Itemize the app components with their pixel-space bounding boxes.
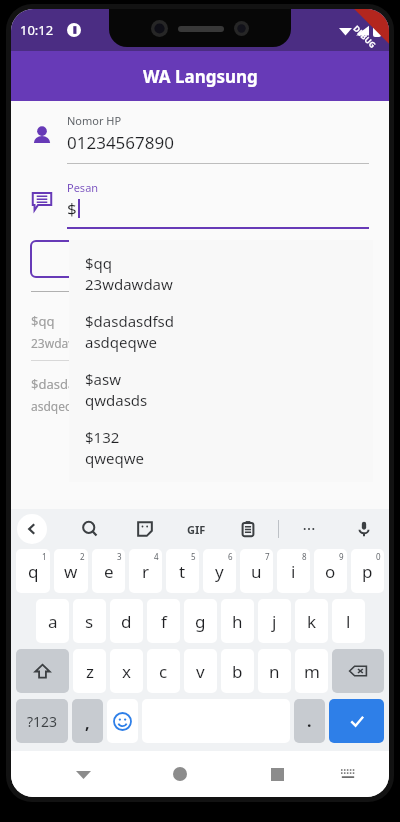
staticText: x xyxy=(122,660,131,683)
staticText: f xyxy=(161,610,167,633)
button[interactable]: c xyxy=(147,649,180,693)
staticText: y xyxy=(215,560,224,583)
staticText: c xyxy=(159,660,168,683)
button[interactable]: w xyxy=(54,549,88,593)
staticText: Pesan xyxy=(67,180,99,195)
staticText: 23wdawdaw xyxy=(85,274,173,294)
button[interactable]: u xyxy=(240,549,273,593)
button[interactable]: a xyxy=(36,599,69,643)
button[interactable]: e xyxy=(92,549,125,593)
staticText: $qq xyxy=(85,253,113,273)
staticText: 01234567890 xyxy=(67,131,174,154)
staticText: t xyxy=(179,560,186,583)
button[interactable]: y xyxy=(203,549,236,593)
button[interactable]: Voice input xyxy=(351,516,377,542)
button[interactable]: o xyxy=(314,549,347,593)
button[interactable]: Backspace xyxy=(332,649,384,693)
button[interactable]: i xyxy=(277,549,310,593)
button[interactable]: Clipboard xyxy=(235,516,261,542)
staticText: , xyxy=(85,712,90,734)
staticText: ?123 xyxy=(27,712,58,731)
button[interactable]: v xyxy=(184,649,217,693)
staticText: 0 xyxy=(376,551,381,562)
button[interactable]: b xyxy=(221,649,254,693)
button[interactable]: Shift xyxy=(16,649,69,693)
staticText: w xyxy=(64,560,78,583)
staticText: i xyxy=(291,560,296,583)
staticText: a xyxy=(48,610,58,633)
button[interactable]: $asw xyxy=(69,365,373,414)
staticText: 9 xyxy=(339,551,344,562)
staticText: $asw xyxy=(85,369,121,389)
button[interactable]: $dasdasdfsd xyxy=(69,307,373,356)
button[interactable]: j xyxy=(258,599,291,643)
staticText: 7 xyxy=(265,551,270,562)
button[interactable]: Back xyxy=(66,757,100,791)
staticText: $132 xyxy=(85,427,120,447)
button[interactable]: r xyxy=(129,549,162,593)
staticText: WA Langsung xyxy=(143,65,258,88)
button[interactable] xyxy=(31,241,369,277)
staticText: Nomor HP xyxy=(67,113,122,128)
button[interactable]: Enter xyxy=(329,699,384,743)
staticText: $ xyxy=(67,197,77,220)
button[interactable]: n xyxy=(258,649,291,693)
button[interactable]: GIF xyxy=(187,522,206,537)
staticText: $dasdasdfsd xyxy=(85,311,175,331)
staticText: j xyxy=(272,610,277,633)
staticText: p xyxy=(362,560,373,583)
staticText: 1 xyxy=(42,551,47,562)
button[interactable]: Search xyxy=(77,516,103,542)
staticText: 3 xyxy=(117,551,122,562)
staticText: s xyxy=(85,610,94,633)
button[interactable]: h xyxy=(221,599,254,643)
button[interactable]: s xyxy=(73,599,106,643)
button[interactable]: x xyxy=(110,649,143,693)
staticText: DEBUG xyxy=(351,23,379,50)
staticText: 6 xyxy=(228,551,233,562)
staticText: 2 xyxy=(80,551,85,562)
staticText: u xyxy=(251,560,262,583)
button[interactable]: . xyxy=(294,699,325,743)
staticText: q xyxy=(28,560,39,583)
button[interactable]: l xyxy=(332,599,365,643)
staticText: . xyxy=(307,710,312,732)
staticText: v xyxy=(196,660,205,683)
button[interactable]: More options xyxy=(296,516,322,542)
staticText: h xyxy=(232,610,243,633)
staticText: e xyxy=(104,560,114,583)
button[interactable]: k xyxy=(295,599,328,643)
staticText: z xyxy=(86,660,94,683)
button[interactable]: Switch keyboard xyxy=(333,759,363,789)
staticText: 4 xyxy=(154,551,159,562)
button[interactable]: m xyxy=(295,649,328,693)
button[interactable]: , xyxy=(72,699,103,743)
staticText: b xyxy=(232,660,243,683)
staticText: d xyxy=(121,610,132,633)
button[interactable]: g xyxy=(184,599,217,643)
button[interactable]: $qq xyxy=(11,312,389,360)
button[interactable]: $132 xyxy=(69,423,373,472)
button[interactable]: z xyxy=(73,649,106,693)
staticText: 8 xyxy=(302,551,307,562)
button[interactable]: Home xyxy=(163,757,197,791)
button[interactable]: Back xyxy=(17,514,47,544)
button[interactable]: ?123 xyxy=(16,699,68,743)
button[interactable]: Stickers xyxy=(132,516,158,542)
button[interactable]: q xyxy=(16,549,50,593)
staticText: o xyxy=(325,560,336,583)
button[interactable]: f xyxy=(147,599,180,643)
button[interactable]: p xyxy=(351,549,384,593)
button[interactable]: d xyxy=(110,599,143,643)
button[interactable]: t xyxy=(166,549,199,593)
staticText: l xyxy=(346,610,351,633)
staticText: 23wdawdaw xyxy=(31,335,102,351)
button[interactable]: $qq xyxy=(69,249,373,298)
button[interactable]: Recent apps xyxy=(260,757,294,791)
button[interactable]: Emoji xyxy=(107,699,138,743)
staticText: r xyxy=(142,560,150,583)
button[interactable]: $dasdasdfsd xyxy=(11,375,389,423)
